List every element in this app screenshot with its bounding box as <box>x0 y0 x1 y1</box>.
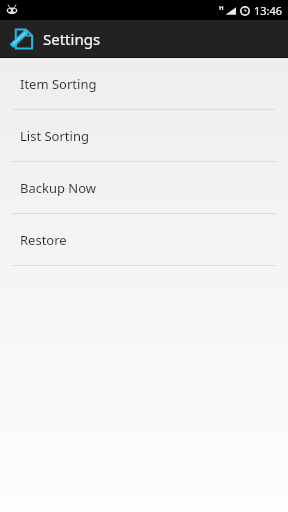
staticText: Backup Now <box>20 179 97 197</box>
staticText: Restore <box>20 231 67 249</box>
staticText: H <box>219 4 224 12</box>
button[interactable]: List Sorting <box>0 110 288 161</box>
button[interactable]: Restore <box>0 214 288 265</box>
button[interactable]: Item Sorting <box>0 58 288 109</box>
staticText: Item Sorting <box>20 75 97 93</box>
button[interactable]: Backup Now <box>0 162 288 213</box>
staticText: List Sorting <box>20 127 89 145</box>
staticText: Settings <box>43 29 101 49</box>
staticText: 13:46 <box>254 3 283 18</box>
